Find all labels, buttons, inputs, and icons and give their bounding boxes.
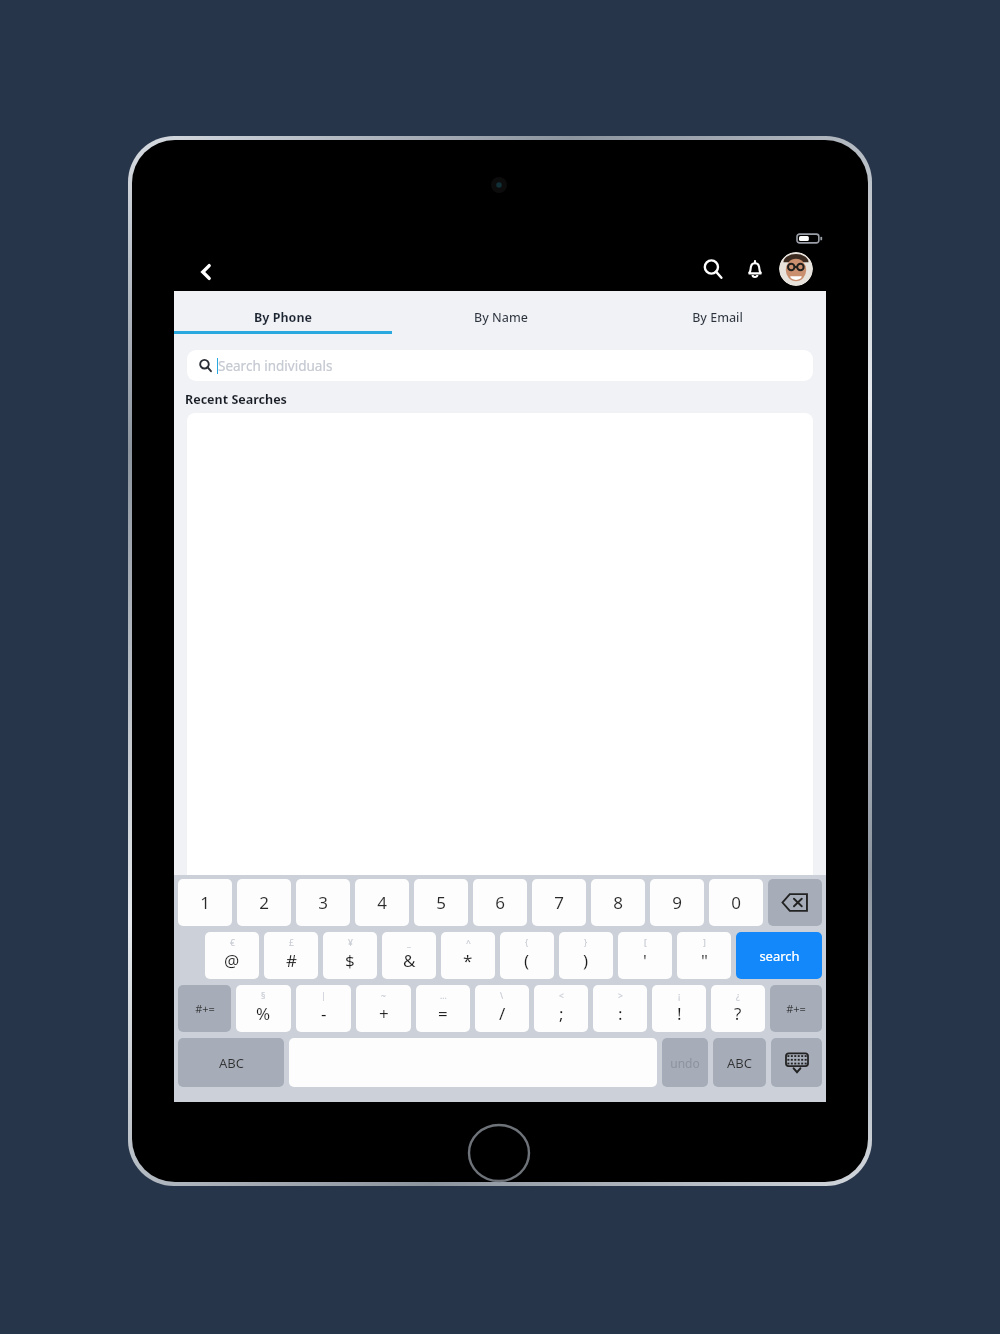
button[interactable]: ¥	[323, 932, 377, 979]
button[interactable]: ABC	[178, 1038, 284, 1087]
staticText: :	[618, 1002, 623, 1025]
button[interactable]: search	[736, 932, 822, 979]
button[interactable]: 6	[473, 879, 527, 926]
button[interactable]: ...	[416, 985, 470, 1032]
staticText: #+=	[195, 1001, 215, 1016]
staticText: #	[286, 949, 297, 972]
staticText: 6	[495, 891, 505, 914]
button[interactable]: Profile	[779, 252, 813, 286]
button[interactable]: [	[618, 932, 672, 979]
staticText: '	[643, 949, 647, 972]
staticText: /	[499, 1002, 506, 1025]
button[interactable]: undo	[662, 1038, 708, 1087]
button[interactable]: 5	[414, 879, 468, 926]
staticText: 5	[436, 891, 446, 914]
staticText: &	[403, 949, 416, 972]
staticText: 1	[200, 891, 210, 914]
staticText: §	[261, 990, 266, 1002]
staticText: ]	[703, 937, 706, 949]
button[interactable]: ABC	[713, 1038, 766, 1087]
button[interactable]: 2	[237, 879, 291, 926]
button[interactable]: \	[475, 985, 529, 1032]
staticText: "	[701, 949, 708, 972]
button[interactable]: |	[296, 985, 351, 1032]
staticText: !	[677, 1002, 682, 1025]
button[interactable]: Search	[694, 250, 732, 288]
staticText: 7	[554, 891, 564, 914]
button[interactable]: Hide keyboard	[771, 1038, 822, 1087]
staticText: 0	[731, 891, 741, 914]
staticText: €	[230, 937, 235, 949]
staticText: <	[559, 990, 564, 1002]
staticText: {	[525, 937, 529, 949]
staticText: undo	[670, 1055, 700, 1071]
button[interactable]: 7	[532, 879, 586, 926]
staticText: ;	[559, 1002, 564, 1025]
button[interactable]: ]	[677, 932, 731, 979]
staticText: By Email	[692, 309, 743, 326]
staticText: 9	[672, 891, 682, 914]
button[interactable]: By Name	[392, 291, 609, 334]
button[interactable]: 4	[355, 879, 409, 926]
staticText: +	[379, 1002, 389, 1025]
button[interactable]: ~	[356, 985, 411, 1032]
staticText: ...	[440, 990, 447, 1002]
staticText: 4	[377, 891, 387, 914]
button[interactable]: ¡	[652, 985, 706, 1032]
staticText: By Name	[474, 309, 528, 326]
staticText: _	[407, 937, 411, 949]
staticText: )	[583, 949, 589, 972]
staticText: Search individuals	[218, 357, 333, 375]
staticText: \	[500, 990, 504, 1002]
button[interactable]: Back	[186, 252, 226, 292]
button[interactable]: }	[559, 932, 613, 979]
staticText: ¥	[348, 937, 353, 949]
staticText: ¡	[678, 990, 681, 1002]
staticText: $	[345, 949, 355, 972]
button[interactable]: Notifications	[736, 250, 774, 288]
button[interactable]: §	[236, 985, 291, 1032]
staticText: |	[321, 990, 326, 1002]
button[interactable]: 8	[591, 879, 645, 926]
button[interactable]: >	[593, 985, 647, 1032]
button[interactable]: 0	[709, 879, 763, 926]
staticText: 2	[259, 891, 269, 914]
staticText: (	[524, 949, 530, 972]
button[interactable]: Delete	[768, 879, 822, 926]
staticText: search	[759, 947, 800, 965]
staticText: >	[618, 990, 623, 1002]
button[interactable]: ^	[441, 932, 495, 979]
button[interactable]: ¿	[711, 985, 765, 1032]
staticText: ~	[381, 990, 386, 1002]
staticText: ABC	[727, 1054, 752, 1072]
staticText: By Phone	[254, 309, 312, 326]
staticText: }	[584, 937, 588, 949]
button[interactable]: By Phone	[174, 291, 392, 334]
staticText: *	[463, 949, 473, 972]
button[interactable]: <	[534, 985, 588, 1032]
staticText: ?	[734, 1002, 742, 1025]
button[interactable]: {	[500, 932, 554, 979]
staticText: ABC	[219, 1054, 244, 1072]
staticText: ^	[466, 937, 471, 949]
button[interactable]: 1	[178, 879, 232, 926]
staticText: #+=	[786, 1001, 806, 1016]
button[interactable]: By Email	[609, 291, 826, 334]
button[interactable]: £	[264, 932, 318, 979]
button[interactable]: #+=	[178, 985, 231, 1032]
button[interactable]: 3	[296, 879, 350, 926]
button[interactable]: 9	[650, 879, 704, 926]
staticText: 3	[318, 891, 328, 914]
staticText: ¿	[736, 990, 740, 1002]
staticText: Recent Searches	[185, 391, 287, 408]
staticText: [	[644, 937, 647, 949]
button[interactable]: €	[205, 932, 259, 979]
button[interactable]: Search individuals	[187, 350, 813, 381]
button[interactable]: #+=	[770, 985, 822, 1032]
staticText: 8	[613, 891, 623, 914]
staticText: %	[256, 1002, 271, 1025]
button[interactable]: _	[382, 932, 436, 979]
staticText: @	[224, 949, 240, 972]
staticText: -	[321, 1002, 327, 1025]
